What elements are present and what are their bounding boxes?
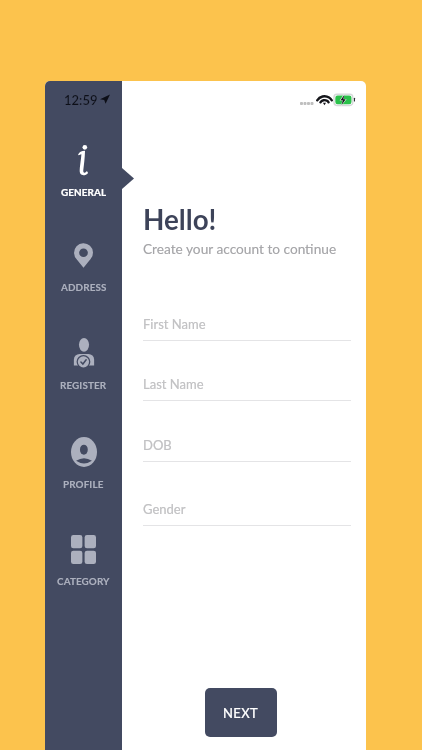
button[interactable]: DOB <box>143 437 351 462</box>
staticText: CATEGORY <box>57 575 110 587</box>
staticText: NEXT <box>223 705 259 721</box>
staticText: First Name <box>143 316 206 332</box>
staticText: GENERAL <box>61 186 107 198</box>
button[interactable]: ADDRESS <box>45 237 122 293</box>
button[interactable]: NEXT <box>205 688 277 737</box>
staticText: 12:59 <box>64 92 98 108</box>
button[interactable]: REGISTER <box>45 335 122 391</box>
button[interactable]: PROFILE <box>45 434 122 490</box>
staticText: Last Name <box>143 376 204 392</box>
staticText: REGISTER <box>60 379 107 391</box>
button[interactable]: Last Name <box>143 376 351 401</box>
button[interactable]: Gender <box>143 501 351 526</box>
staticText: Gender <box>143 501 186 517</box>
button[interactable]: GENERAL <box>45 142 122 198</box>
staticText: ADDRESS <box>61 281 107 293</box>
button[interactable]: First Name <box>143 316 351 341</box>
staticText: Create your account to continue <box>143 240 337 256</box>
staticText: DOB <box>143 437 172 453</box>
button[interactable]: CATEGORY <box>45 531 122 587</box>
staticText: PROFILE <box>63 478 104 490</box>
staticText: Hello! <box>143 203 217 236</box>
